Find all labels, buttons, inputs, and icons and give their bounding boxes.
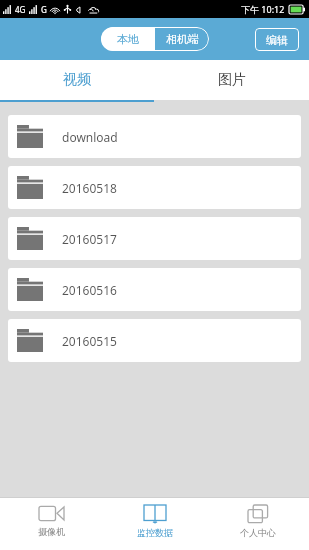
- staticText: download: [62, 129, 118, 145]
- staticText: 20160516: [62, 282, 117, 298]
- button[interactable]: 20160517: [8, 217, 301, 260]
- staticText: 相机端: [166, 32, 199, 46]
- other: 监控数据: [144, 505, 166, 523]
- button[interactable]: 相机端: [155, 27, 209, 51]
- staticText: 编辑: [266, 33, 288, 47]
- button[interactable]: 本地: [101, 27, 155, 51]
- button[interactable]: 监控数据: [103, 498, 206, 550]
- staticText: 监控数据: [137, 527, 173, 538]
- staticText: 20160518: [62, 180, 117, 196]
- staticText: 本地: [117, 32, 139, 46]
- button[interactable]: 20160516: [8, 268, 301, 311]
- staticText: 个人中心: [240, 527, 276, 538]
- staticText: 图片: [218, 71, 246, 89]
- button[interactable]: 个人中心: [206, 498, 309, 550]
- button[interactable]: download: [8, 115, 301, 158]
- button[interactable]: 20160518: [8, 166, 301, 209]
- staticText: 4G: [15, 4, 26, 15]
- staticText: G: [41, 4, 47, 15]
- staticText: 下午 10:12: [241, 3, 285, 15]
- other: 个人中心: [248, 505, 268, 523]
- other: 摄像机: [39, 505, 64, 522]
- button[interactable]: 20160515: [8, 319, 301, 362]
- staticText: 视频: [63, 71, 91, 89]
- staticText: 摄像机: [38, 526, 65, 537]
- staticText: 20160517: [62, 231, 117, 247]
- button[interactable]: 编辑: [255, 28, 299, 51]
- staticText: 20160515: [62, 333, 117, 349]
- button[interactable]: 摄像机: [0, 498, 103, 550]
- button[interactable]: 图片: [154, 60, 309, 100]
- button[interactable]: 视频: [0, 60, 154, 100]
